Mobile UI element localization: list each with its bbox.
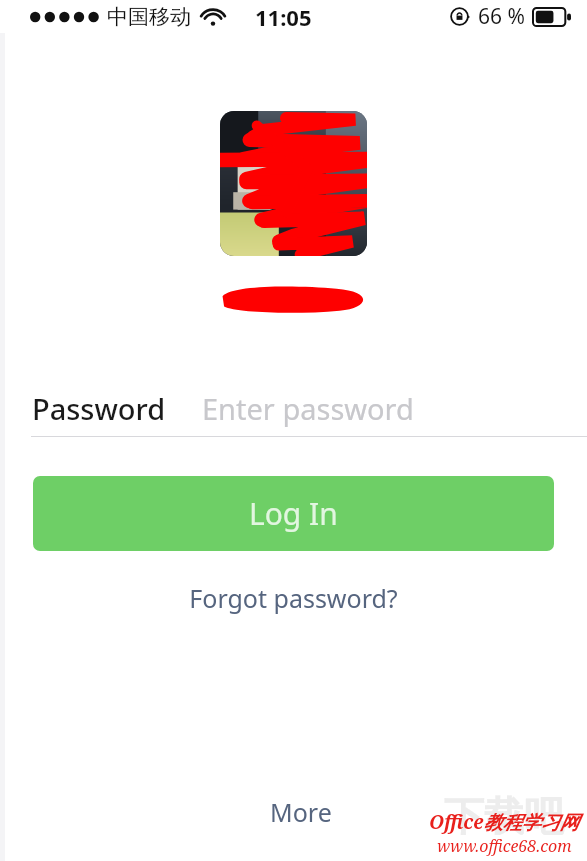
button[interactable]: Forgot password? xyxy=(179,577,408,619)
staticText: 11:05 xyxy=(255,2,312,32)
staticText: www.office68.com xyxy=(437,835,572,857)
staticText: Enter password xyxy=(202,389,414,428)
button[interactable]: Log In xyxy=(33,476,554,551)
button[interactable]: More xyxy=(262,791,340,833)
staticText: 66 % xyxy=(478,2,525,31)
staticText: 中国移动 xyxy=(107,4,191,30)
staticText: Forgot password? xyxy=(189,581,398,615)
button[interactable]: Password xyxy=(0,381,587,436)
staticText: Log In xyxy=(249,493,338,534)
staticText: More xyxy=(270,795,332,829)
staticText: Office教程学习网 xyxy=(429,809,579,835)
button[interactable]: Profile photo xyxy=(220,111,367,256)
staticText: Password xyxy=(32,389,166,428)
staticText: 下载吧 xyxy=(444,791,564,841)
